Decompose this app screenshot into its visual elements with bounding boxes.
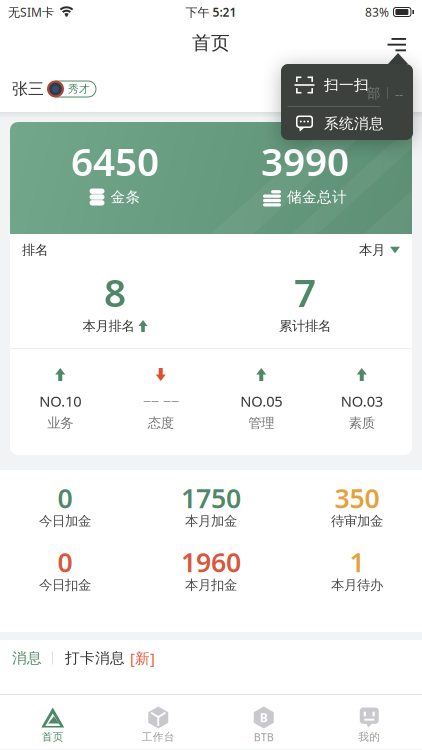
staticText: 本月排名 [82,318,134,334]
staticText: 本月待办 [331,577,383,593]
staticText: 我的 [358,730,380,743]
staticText: 待审加金 [331,513,383,529]
staticText: 今日加金 [39,513,91,529]
staticText: 首页 [192,31,230,54]
staticText: 态度 [148,415,174,431]
staticText: 排名 [22,242,48,258]
button[interactable]: 本月 [359,236,400,264]
staticText: B [260,709,268,725]
staticText: 本月加金 [185,513,237,529]
button[interactable]: 我的 [316,695,422,743]
staticText: 首页 [42,730,64,743]
staticText: 6450 [71,135,159,187]
staticText: 本月 [359,242,385,258]
staticText: 350 [334,480,379,516]
staticText: 累计排名 [279,318,331,334]
staticText: BTB [254,730,274,744]
staticText: 张三 [12,79,44,99]
staticText: 工作台 [142,730,175,743]
button[interactable]: 更多 [387,34,422,56]
staticText: 系统消息 [324,114,384,132]
staticText: NO.03 [341,391,383,411]
staticText: 下午 5:21 [185,4,236,20]
staticText: NO.10 [39,391,81,411]
staticText: [新] [130,648,155,668]
staticText: 打卡消息 [65,649,125,667]
staticText: NO.05 [240,391,282,411]
staticText: 0 [57,480,72,516]
staticText: 秀才 [68,82,90,95]
staticText: 金条 [110,188,140,206]
staticText: 储金总计 [287,188,347,206]
staticText: 1960 [181,544,241,580]
staticText: 无SIM卡 [8,4,54,20]
button[interactable]: 扫一扫 [281,64,413,106]
staticText: 1 [349,544,364,580]
staticText: 3990 [261,135,349,187]
button[interactable]: 工作台 [105,695,211,743]
staticText: 今日扣金 [39,577,91,593]
staticText: 本月扣金 [185,577,237,593]
button[interactable]: 张三 [12,79,96,99]
staticText: 消息 [12,649,42,667]
staticText: 8 [104,266,126,318]
staticText: 部 [367,85,380,101]
staticText: 7 [294,266,316,318]
button[interactable]: B [211,695,316,743]
staticText: −− −− [143,391,179,411]
staticText: 1750 [181,480,241,516]
button[interactable]: 消息 [0,640,422,694]
staticText: 0 [57,544,72,580]
staticText: 83% [365,4,389,20]
staticText: 管理 [248,415,274,431]
staticText: 扫一扫 [324,76,369,94]
staticText: -- [395,85,403,103]
button[interactable]: 首页 [0,695,105,743]
staticText: 业务 [47,415,73,431]
button[interactable]: 系统消息 [281,107,413,140]
staticText: 素质 [349,415,375,431]
